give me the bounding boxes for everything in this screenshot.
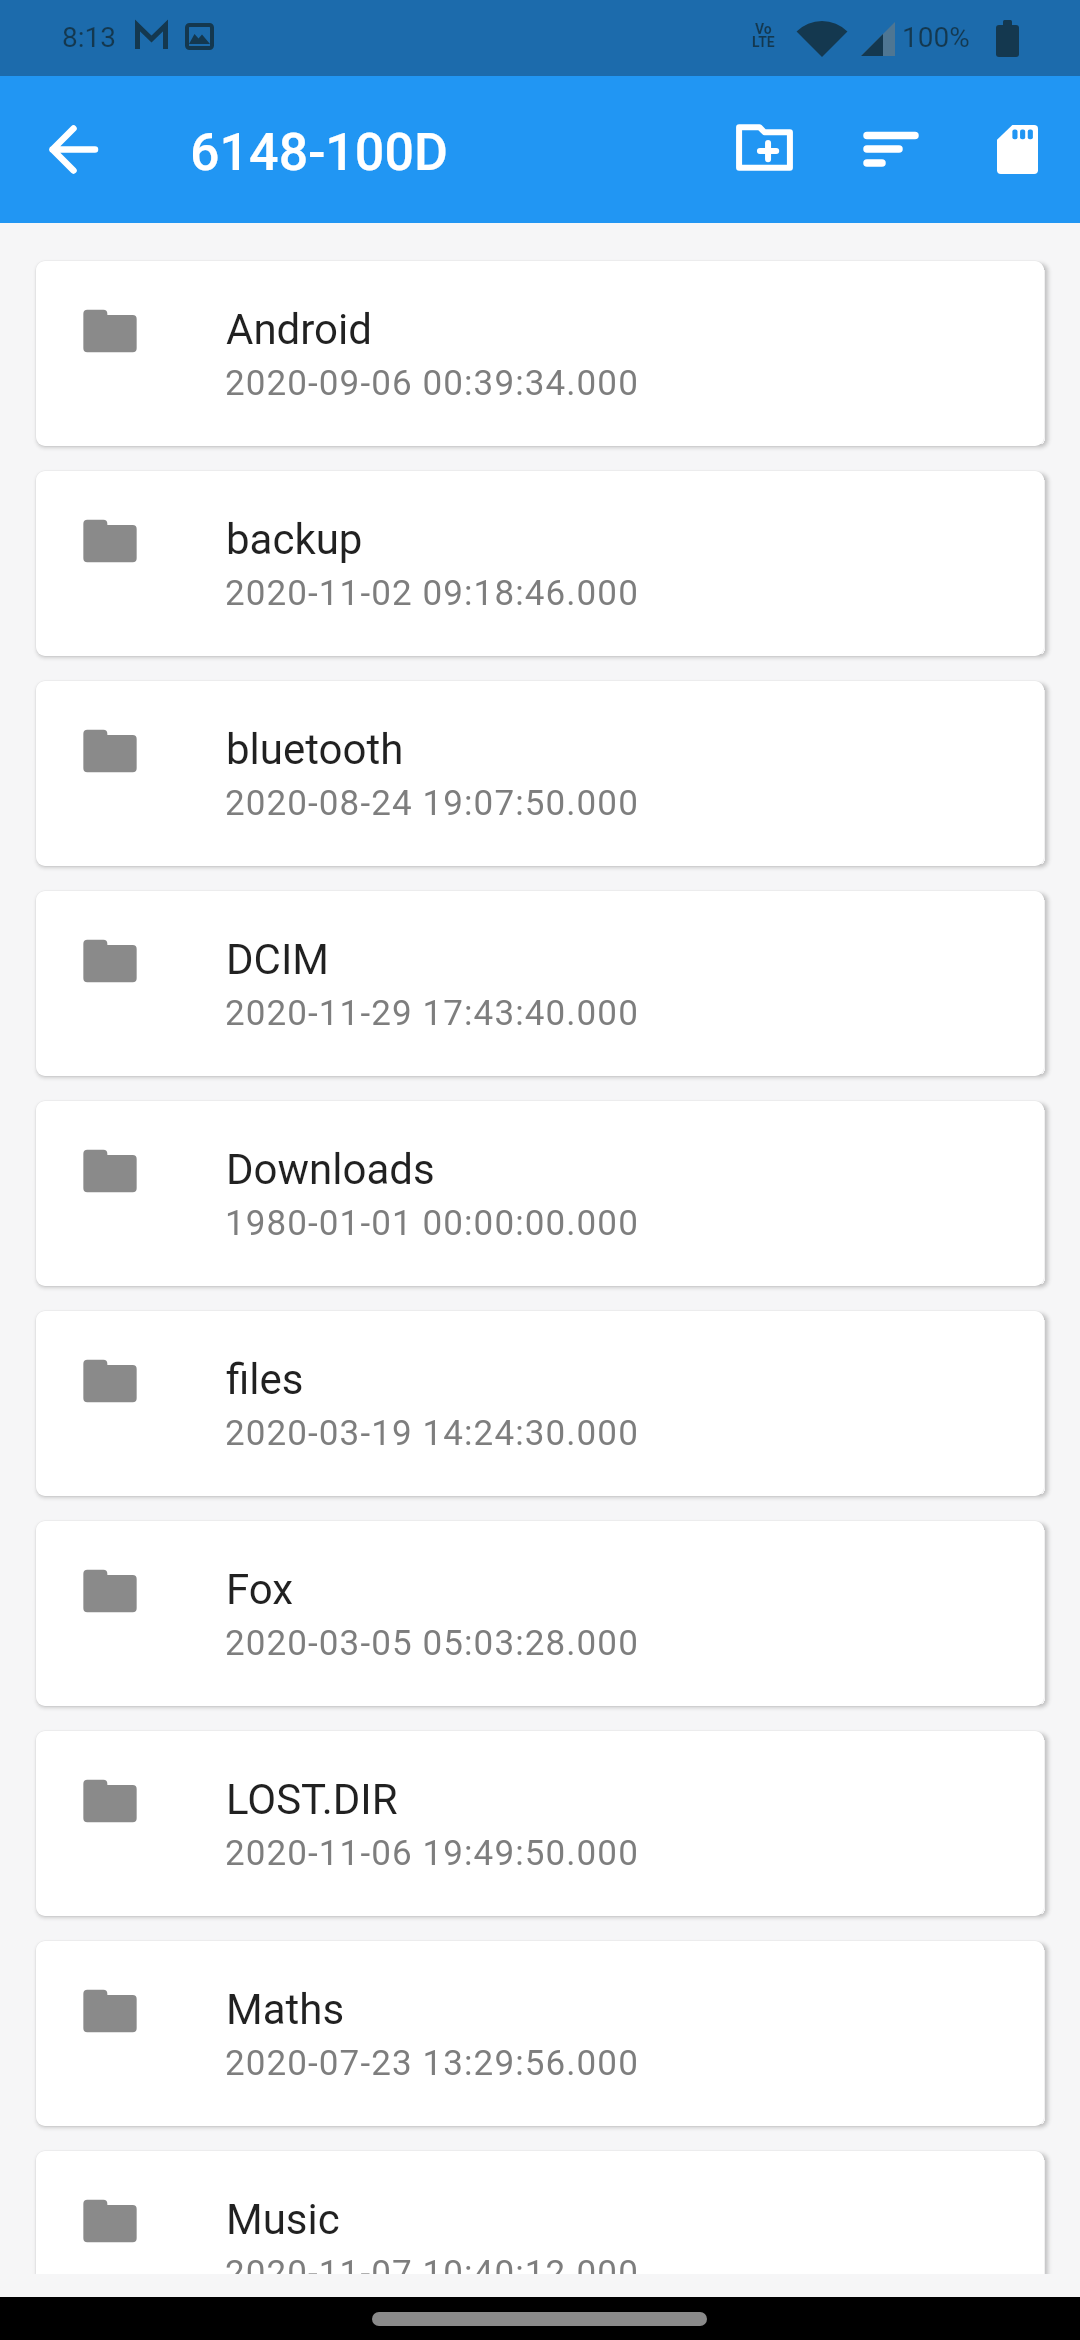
staticText: Maths	[226, 1985, 345, 2034]
staticText: 8:13	[62, 21, 116, 54]
button[interactable]	[40, 114, 112, 186]
button[interactable]: Fox	[36, 1521, 1044, 1706]
button[interactable]: DCIM	[36, 891, 1044, 1076]
staticText: Fox	[226, 1565, 294, 1614]
staticText: LOST.DIR	[226, 1775, 398, 1824]
staticText: 2020-03-05 05:03:28.000	[225, 1623, 639, 1664]
button[interactable]: bluetooth	[36, 681, 1044, 866]
staticText: 2020-07-23 13:29:56.000	[225, 2043, 639, 2084]
staticText: 2020-08-24 19:07:50.000	[225, 783, 639, 824]
staticText: Android	[226, 305, 372, 354]
staticText: Music	[226, 2195, 340, 2244]
staticText: Vo	[755, 21, 772, 37]
button[interactable]	[985, 113, 1057, 185]
staticText: Downloads	[226, 1145, 435, 1194]
staticText: backup	[226, 515, 363, 564]
staticText: 2020-03-19 14:24:30.000	[225, 1413, 639, 1454]
staticText: 2020-11-07 10:40:12.000	[225, 2253, 639, 2274]
staticText: 2020-11-02 09:18:46.000	[225, 573, 639, 614]
staticText: LTE	[752, 34, 775, 50]
button[interactable]	[728, 112, 800, 188]
button[interactable]: Android	[36, 261, 1044, 446]
staticText: 2020-11-06 19:49:50.000	[225, 1833, 639, 1874]
button[interactable]: backup	[36, 471, 1044, 656]
button[interactable]: Music	[36, 2151, 1044, 2274]
button[interactable]	[855, 113, 927, 185]
staticText: DCIM	[226, 935, 329, 984]
staticText: 2020-09-06 00:39:34.000	[225, 363, 639, 404]
staticText: 1980-01-01 00:00:00.000	[225, 1203, 639, 1244]
staticText: 100%	[902, 21, 970, 54]
staticText: 6148-100D	[190, 122, 448, 183]
button[interactable]: files	[36, 1311, 1044, 1496]
staticText: 2020-11-29 17:43:40.000	[225, 993, 639, 1034]
button[interactable]: Downloads	[36, 1101, 1044, 1286]
staticText: bluetooth	[226, 725, 404, 774]
staticText: files	[226, 1355, 304, 1404]
button[interactable]: LOST.DIR	[36, 1731, 1044, 1916]
button[interactable]: Maths	[36, 1941, 1044, 2126]
